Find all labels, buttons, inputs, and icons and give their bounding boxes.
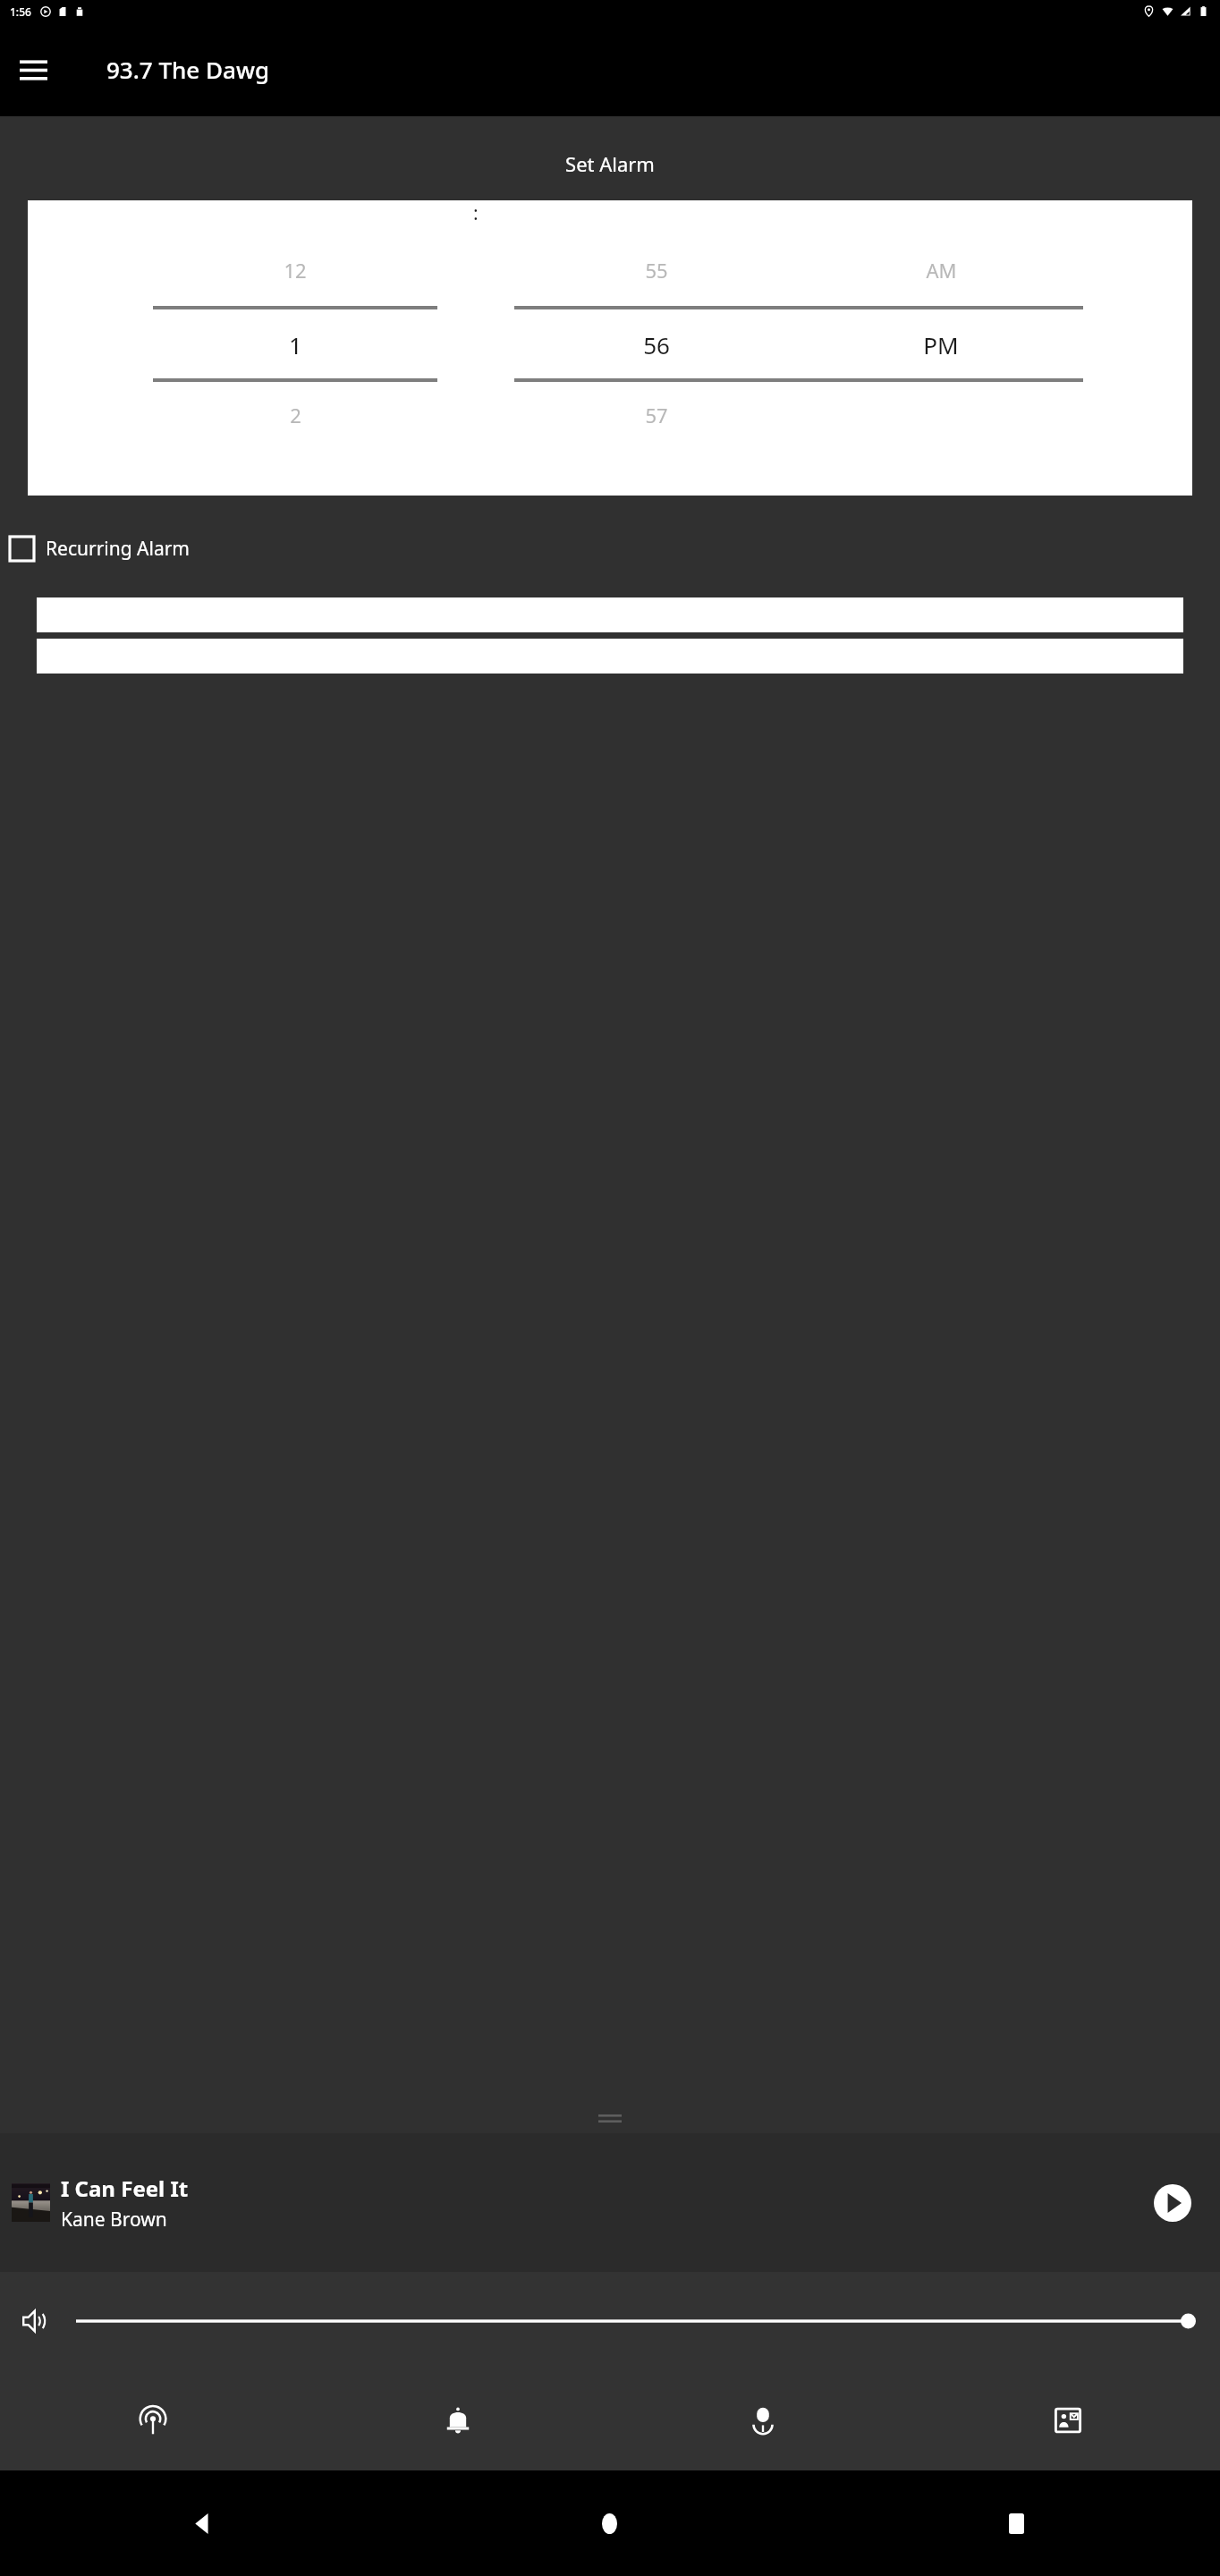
button[interactable]: Volume xyxy=(15,2301,56,2342)
staticText: 1:56 xyxy=(10,4,31,19)
button[interactable]: 55 xyxy=(514,200,799,496)
staticText: AM xyxy=(926,257,957,284)
button[interactable]: Back xyxy=(0,2470,406,2576)
staticText: 1 xyxy=(289,329,302,360)
staticText: 93.7 The Dawg xyxy=(106,54,270,85)
button[interactable]: Microphone xyxy=(610,2370,915,2470)
staticText: I Can Feel It xyxy=(61,2173,189,2203)
staticText: Set Alarm xyxy=(0,150,1220,177)
button[interactable] xyxy=(76,2303,1196,2339)
button[interactable]: Recent apps xyxy=(813,2470,1220,2576)
staticText: Kane Brown xyxy=(61,2207,167,2233)
button[interactable]: Play xyxy=(1141,2172,1204,2234)
staticText: Recurring Alarm xyxy=(46,536,191,562)
staticText: 2 xyxy=(290,402,301,428)
staticText: 12 xyxy=(284,257,307,284)
button[interactable]: Radio xyxy=(0,2370,305,2470)
button[interactable]: Contact xyxy=(915,2370,1220,2470)
staticText: PM xyxy=(923,329,959,360)
button[interactable]: Alarms xyxy=(305,2370,610,2470)
staticText: 57 xyxy=(645,402,668,428)
staticText: 56 xyxy=(643,329,670,360)
button[interactable]: Home xyxy=(406,2470,813,2576)
button[interactable]: I Can Feel It xyxy=(0,2133,1220,2272)
staticText: : xyxy=(473,200,479,226)
staticText: 55 xyxy=(645,257,668,284)
button[interactable] xyxy=(37,597,1183,632)
button[interactable]: 12 xyxy=(153,200,437,496)
button[interactable]: Recurring Alarm xyxy=(0,522,1220,574)
button[interactable]: Open navigation menu xyxy=(9,46,57,94)
button[interactable]: AM xyxy=(799,200,1083,496)
